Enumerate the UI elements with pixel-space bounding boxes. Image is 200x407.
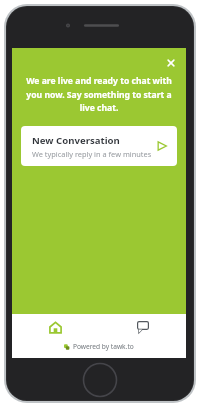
button[interactable]: Powered by tawk.to [64,342,134,351]
staticText: New Conversation [32,134,120,147]
staticText: We typically reply in a few minutes [32,149,152,159]
staticText: Powered by tawk.to [73,342,134,351]
button[interactable]: Close [161,53,181,73]
button[interactable]: New Conversation [21,126,177,166]
button[interactable]: Home [12,314,99,340]
staticText: We are live and ready to chat with you n… [25,75,173,113]
button[interactable]: Messages [99,314,186,340]
